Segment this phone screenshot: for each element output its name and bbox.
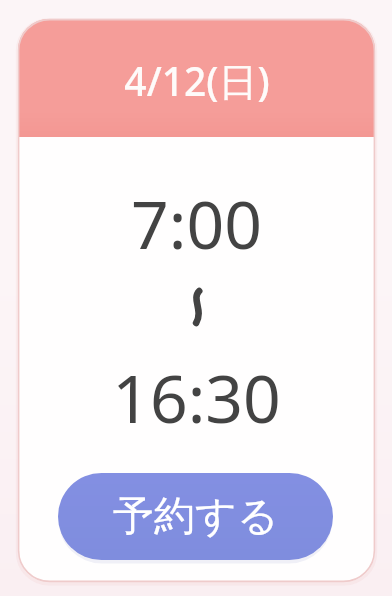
staticText: 予約する (113, 491, 279, 543)
button[interactable]: 4/12(日) (18, 19, 375, 137)
staticText: 16:30 (112, 352, 281, 442)
staticText: 4/12(日) (124, 54, 270, 107)
button[interactable]: 予約する (58, 473, 333, 560)
staticText: 7:00 (131, 178, 262, 268)
